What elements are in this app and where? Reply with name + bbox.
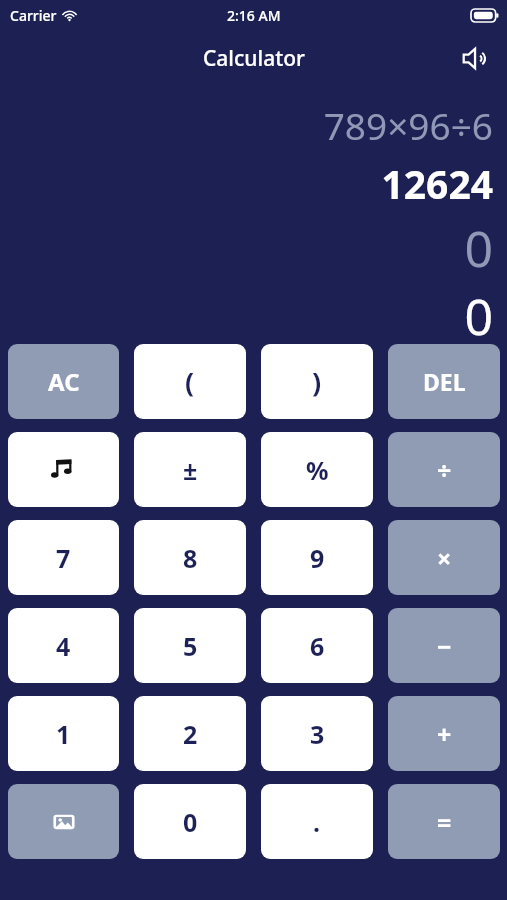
- button[interactable]: 7: [8, 520, 119, 595]
- button[interactable]: AC: [8, 344, 119, 419]
- staticText: 3: [310, 717, 325, 751]
- button[interactable]: 9: [261, 520, 373, 595]
- staticText: 4: [56, 629, 71, 663]
- button[interactable]: ): [261, 344, 373, 419]
- button[interactable]: Sound: [453, 37, 495, 79]
- button[interactable]: +: [388, 696, 500, 771]
- staticText: 12624: [381, 157, 493, 210]
- staticText: +: [437, 717, 452, 751]
- button[interactable]: Themes: [8, 784, 119, 859]
- staticText: 0: [464, 282, 493, 344]
- staticText: AC: [48, 365, 80, 398]
- button[interactable]: .: [261, 784, 373, 859]
- staticText: ): [312, 363, 322, 400]
- staticText: 2: [183, 717, 198, 751]
- button[interactable]: (: [134, 344, 246, 419]
- staticText: 0: [183, 805, 198, 839]
- button[interactable]: DEL: [388, 344, 500, 419]
- staticText: 7: [56, 541, 71, 575]
- button[interactable]: ×: [388, 520, 500, 595]
- button[interactable]: 5: [134, 608, 246, 683]
- staticText: 0: [464, 214, 493, 282]
- button[interactable]: 1: [8, 696, 119, 771]
- staticText: 9: [310, 541, 325, 575]
- staticText: =: [437, 805, 452, 839]
- button[interactable]: 6: [261, 608, 373, 683]
- staticText: 1: [56, 717, 71, 751]
- button[interactable]: 8: [134, 520, 246, 595]
- button[interactable]: 3: [261, 696, 373, 771]
- staticText: 2:16 AM: [227, 6, 281, 25]
- staticText: .: [313, 805, 321, 839]
- staticText: DEL: [423, 366, 466, 397]
- button[interactable]: −: [388, 608, 500, 683]
- staticText: Carrier: [10, 6, 57, 25]
- staticText: %: [306, 453, 329, 487]
- staticText: Calculator: [203, 44, 305, 73]
- staticText: 6: [310, 629, 325, 663]
- staticText: ×: [437, 541, 452, 575]
- button[interactable]: Sound settings: [8, 432, 119, 507]
- staticText: ±: [183, 453, 198, 487]
- staticText: 789×96÷6: [323, 100, 493, 150]
- button[interactable]: 0: [134, 784, 246, 859]
- button[interactable]: =: [388, 784, 500, 859]
- staticText: ÷: [437, 453, 452, 487]
- button[interactable]: ÷: [388, 432, 500, 507]
- button[interactable]: 4: [8, 608, 119, 683]
- button[interactable]: 2: [134, 696, 246, 771]
- button[interactable]: %: [261, 432, 373, 507]
- staticText: (: [185, 363, 195, 400]
- staticText: 5: [183, 629, 198, 663]
- button[interactable]: ±: [134, 432, 246, 507]
- staticText: −: [437, 629, 452, 663]
- staticText: 8: [183, 541, 198, 575]
